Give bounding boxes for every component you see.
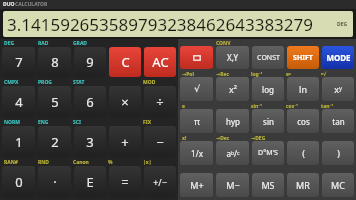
button[interactable]: hyp: [216, 109, 249, 133]
button[interactable]: 0: [2, 166, 35, 197]
button[interactable]: log: [252, 77, 284, 101]
button[interactable]: (: [287, 141, 319, 165]
button[interactable]: ×: [109, 86, 141, 117]
staticText: 9: [86, 53, 94, 71]
staticText: sin⁻¹: [251, 103, 262, 109]
button[interactable]: −: [144, 126, 176, 157]
staticText: 3: [86, 133, 94, 151]
button[interactable]: M−: [216, 173, 249, 197]
button[interactable]: ·: [38, 166, 71, 197]
staticText: 8: [51, 53, 59, 71]
button[interactable]: 7: [2, 47, 35, 77]
staticText: 5: [51, 93, 59, 111]
staticText: RAN#: [4, 159, 19, 166]
button[interactable]: x²: [216, 77, 249, 101]
button[interactable]: =: [109, 166, 141, 197]
staticText: →Rec: [216, 71, 230, 77]
staticText: ENG: [38, 119, 49, 126]
button[interactable]: sin: [252, 109, 284, 133]
button[interactable]: Backspace: [180, 46, 213, 69]
staticText: SCI: [73, 119, 81, 126]
button[interactable]: X,Y: [216, 46, 249, 69]
button[interactable]: AC: [144, 47, 176, 77]
button[interactable]: 3.141592653589793238462643383279: [3, 11, 353, 37]
button[interactable]: C: [109, 47, 141, 77]
staticText: ): [337, 147, 340, 159]
staticText: AC: [152, 53, 169, 71]
button[interactable]: SHIFT: [287, 46, 319, 69]
staticText: e: [182, 103, 185, 109]
button[interactable]: MR: [287, 173, 319, 197]
staticText: MC: [331, 179, 345, 191]
staticText: 1: [15, 133, 23, 151]
button[interactable]: 4: [2, 86, 35, 117]
staticText: C: [121, 53, 130, 71]
button[interactable]: tan: [322, 109, 354, 133]
button[interactable]: xʸ: [322, 77, 354, 101]
button[interactable]: ): [322, 141, 354, 165]
staticText: tan⁻¹: [321, 103, 334, 109]
staticText: GRAD: [73, 40, 88, 47]
staticText: E: [86, 173, 94, 191]
staticText: log: [262, 84, 274, 95]
staticText: 4: [15, 93, 23, 111]
button[interactable]: MS: [252, 173, 284, 197]
staticText: cos: [297, 116, 310, 127]
staticText: M+: [190, 179, 204, 191]
staticText: STAT: [73, 79, 85, 86]
staticText: SHIFT: [293, 53, 313, 63]
button[interactable]: √: [180, 77, 213, 101]
button[interactable]: +: [109, 126, 141, 157]
button[interactable]: 1/x: [180, 141, 213, 165]
button[interactable]: MODE: [322, 46, 354, 69]
staticText: CONST: [257, 53, 280, 63]
button[interactable]: aᵇ/ᶜ: [216, 141, 249, 165]
button[interactable]: M+: [180, 173, 213, 197]
staticText: ×: [121, 93, 129, 111]
button[interactable]: ln: [287, 77, 319, 101]
staticText: cos⁻¹: [286, 103, 298, 109]
staticText: FIX: [143, 119, 152, 126]
button[interactable]: 1: [2, 126, 35, 157]
staticText: DEG: [4, 40, 15, 47]
staticText: eˣ: [286, 71, 291, 77]
staticText: MOD: [143, 79, 156, 86]
button[interactable]: E: [74, 166, 106, 197]
staticText: −: [156, 133, 164, 151]
staticText: DUO: [3, 1, 15, 8]
staticText: RND: [38, 159, 50, 166]
button[interactable]: ÷: [144, 86, 176, 117]
button[interactable]: 2: [38, 126, 71, 157]
button[interactable]: CONST: [252, 46, 284, 69]
button[interactable]: 6: [74, 86, 106, 117]
staticText: tan: [332, 116, 345, 127]
button[interactable]: 5: [38, 86, 71, 117]
staticText: M−: [226, 179, 240, 191]
button[interactable]: D°M'S: [252, 141, 284, 165]
staticText: PROG: [38, 79, 52, 86]
button[interactable]: 8: [38, 47, 71, 77]
staticText: →Pol: [182, 71, 194, 77]
button[interactable]: 3: [74, 126, 106, 157]
staticText: 2: [51, 133, 59, 151]
staticText: ln: [299, 83, 307, 95]
button[interactable]: +/−: [144, 166, 176, 197]
staticText: ·: [53, 173, 57, 191]
staticText: +/−: [153, 176, 167, 188]
button[interactable]: MC: [322, 173, 354, 197]
button[interactable]: cos: [287, 109, 319, 133]
staticText: RAD: [38, 40, 49, 47]
staticText: →Dec: [216, 135, 230, 141]
button[interactable]: 9: [74, 47, 106, 77]
staticText: CALCULATOR: [15, 1, 48, 8]
button[interactable]: π: [180, 109, 213, 133]
staticText: log⁻¹: [251, 71, 263, 77]
staticText: 0: [15, 173, 23, 191]
staticText: 7: [15, 53, 23, 71]
staticText: →DEG: [251, 135, 266, 141]
staticText: NORM: [4, 119, 21, 126]
staticText: |x|: [143, 159, 152, 166]
staticText: +: [121, 133, 129, 151]
staticText: hyp: [226, 116, 240, 127]
staticText: ÷: [156, 93, 164, 111]
